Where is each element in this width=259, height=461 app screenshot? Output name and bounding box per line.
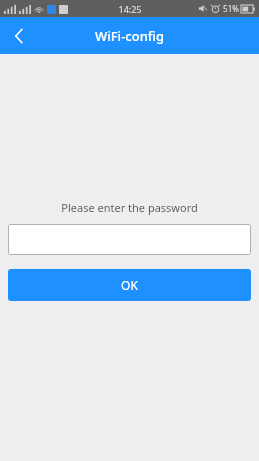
staticText: 14:25 [118,3,142,15]
button[interactable]: Back [0,17,38,54]
staticText: Please enter the password [0,200,259,215]
staticText: WiFi-config [95,27,164,45]
staticText: 51% [223,3,239,14]
staticText: OK [121,277,138,293]
button[interactable] [8,224,251,255]
button[interactable]: OK [8,269,251,301]
